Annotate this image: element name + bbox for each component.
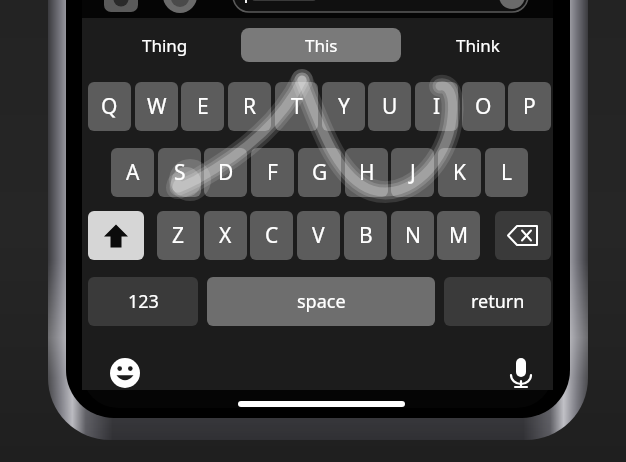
staticText: U [382, 92, 398, 121]
staticText: D [218, 158, 234, 187]
button[interactable]: B [344, 211, 387, 260]
staticText: F [267, 158, 278, 187]
button[interactable]: space [207, 277, 435, 326]
button[interactable]: N [391, 211, 434, 260]
staticText: X [219, 221, 232, 250]
button[interactable]: P [508, 82, 551, 131]
button[interactable]: Emoji [104, 353, 146, 393]
staticText: space [297, 289, 346, 314]
staticText: G [312, 158, 328, 187]
button[interactable]: Dictation [500, 353, 542, 393]
staticText: T [291, 92, 303, 121]
button[interactable]: K [438, 148, 481, 197]
button[interactable]: This [241, 28, 401, 62]
staticText: N [405, 221, 421, 250]
button[interactable]: X [204, 211, 247, 260]
staticText: return [471, 289, 525, 314]
staticText: C [265, 221, 279, 250]
staticText: A [126, 158, 140, 187]
button[interactable]: U [368, 82, 411, 131]
button[interactable]: M [437, 211, 480, 260]
button[interactable]: C [250, 211, 293, 260]
button[interactable]: S [158, 148, 201, 197]
staticText: O [475, 92, 492, 121]
button[interactable]: Y [322, 82, 365, 131]
button[interactable]: D [204, 148, 247, 197]
staticText: Think [456, 34, 500, 57]
staticText: Y [338, 92, 350, 121]
staticText: H [359, 158, 375, 187]
staticText: I [433, 92, 441, 121]
button[interactable]: F [251, 148, 294, 197]
staticText: Q [101, 92, 118, 121]
staticText: M [449, 221, 469, 250]
button[interactable]: E [181, 82, 224, 131]
button[interactable]: Backspace [495, 211, 551, 260]
button[interactable]: W [135, 82, 178, 131]
staticText: R [243, 92, 257, 121]
button[interactable]: Shift [88, 211, 144, 260]
button[interactable]: Q [88, 82, 131, 131]
button[interactable]: L [485, 148, 528, 197]
button[interactable]: G [298, 148, 341, 197]
button[interactable]: H [345, 148, 388, 197]
staticText: B [359, 221, 373, 250]
staticText: W [147, 92, 167, 121]
button[interactable]: O [462, 82, 505, 131]
button[interactable]: V [297, 211, 340, 260]
button[interactable]: Think [408, 28, 548, 62]
staticText: P [523, 92, 536, 121]
button[interactable]: return [444, 277, 551, 326]
button[interactable]: Thing [95, 28, 235, 62]
staticText: L [501, 158, 513, 187]
button[interactable]: Z [157, 211, 200, 260]
staticText: Z [172, 221, 185, 250]
staticText: S [174, 158, 186, 187]
staticText: This [305, 34, 338, 57]
button[interactable]: 123 [88, 277, 198, 326]
staticText: Thing [142, 34, 188, 57]
staticText: 123 [128, 289, 159, 314]
staticText: V [312, 221, 325, 250]
staticText: J [410, 158, 416, 187]
staticText: E [197, 92, 209, 121]
staticText: K [453, 158, 466, 187]
button[interactable]: J [391, 148, 434, 197]
button[interactable]: A [111, 148, 154, 197]
button[interactable]: T [275, 82, 318, 131]
button[interactable]: R [228, 82, 271, 131]
button[interactable]: I [415, 82, 458, 131]
